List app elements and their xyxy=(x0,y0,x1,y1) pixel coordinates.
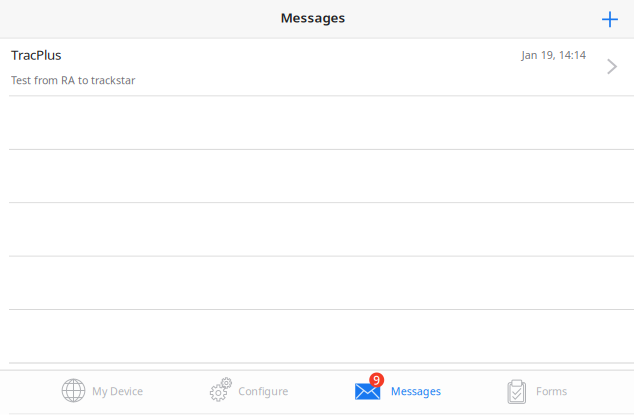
staticText: Jan 19, 14:14 xyxy=(522,48,586,62)
staticText: My Device xyxy=(92,384,143,398)
staticText: Forms xyxy=(536,384,567,398)
button[interactable]: Forms xyxy=(508,370,567,413)
staticText: TracPlus xyxy=(11,46,61,63)
staticText: Messages xyxy=(391,384,441,398)
staticText: Configure xyxy=(238,384,288,398)
button[interactable]: 9 xyxy=(355,370,441,413)
button[interactable]: Configure xyxy=(210,370,288,413)
button[interactable]: My Device xyxy=(61,370,143,413)
staticText: 9 xyxy=(373,372,380,388)
staticText: Test from RA to trackstar xyxy=(11,73,135,87)
staticText: Messages xyxy=(280,8,345,26)
button[interactable]: TracPlus xyxy=(0,39,634,95)
button[interactable]: New message xyxy=(587,1,634,38)
